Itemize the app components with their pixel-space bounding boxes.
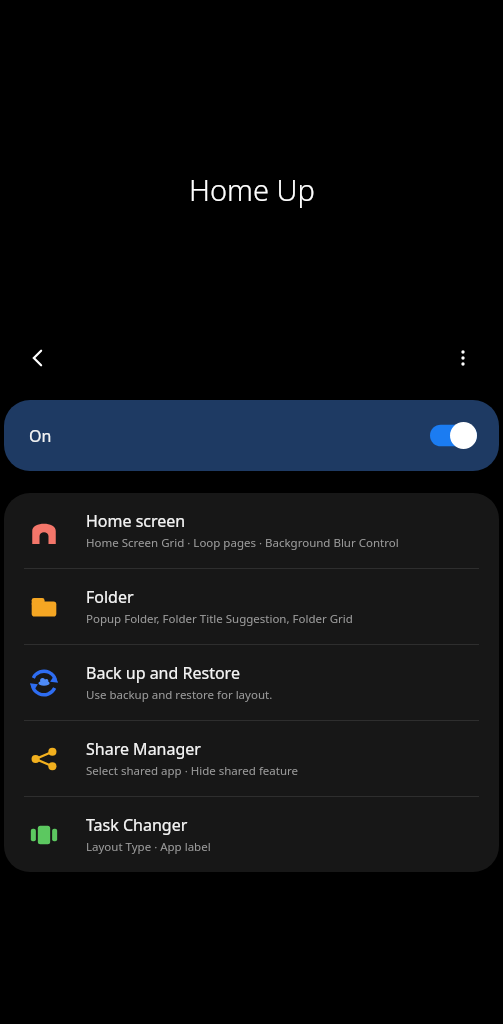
staticText: Popup Folder, Folder Title Suggestion, F… [86,611,353,627]
staticText: On [29,425,52,447]
button[interactable]: Folder [4,569,499,644]
staticText: Home screen [86,510,186,532]
button[interactable]: Back up and Restore [4,645,499,720]
button[interactable]: More options [439,334,487,382]
button[interactable]: Share Manager [4,721,499,796]
staticText: Home Up [189,170,315,209]
button[interactable]: On [4,400,499,471]
button[interactable]: Home screen [4,493,499,568]
staticText: Back up and Restore [86,662,240,684]
button[interactable]: Back [14,334,62,382]
staticText: Use backup and restore for layout. [86,687,273,703]
staticText: Share Manager [86,738,201,760]
staticText: Folder [86,586,134,608]
staticText: Task Changer [86,814,188,836]
staticText: Layout Type · App label [86,839,211,855]
staticText: Select shared app · Hide shared feature [86,763,299,779]
staticText: Home Screen Grid · Loop pages · Backgrou… [86,535,399,551]
button[interactable]: Task Changer [4,797,499,872]
